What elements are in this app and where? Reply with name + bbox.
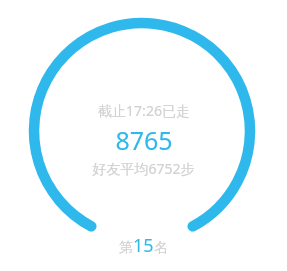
staticText: 第 [119,239,133,257]
button[interactable]: 第 [115,232,172,257]
staticText: 15 [133,233,154,258]
button[interactable]: Step progress ring [0,0,287,271]
staticText: 8765 [115,123,173,157]
button[interactable]: 截止17:26已走 [92,101,195,178]
staticText: 好友平均6752步 [92,159,195,178]
staticText: 截止17:26已走 [98,101,190,120]
staticText: 名 [154,239,168,257]
